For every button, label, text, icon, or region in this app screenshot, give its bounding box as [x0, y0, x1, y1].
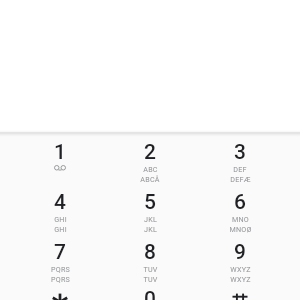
- staticText: ABCÅ: [140, 175, 160, 183]
- staticText: 9: [234, 240, 246, 265]
- button[interactable]: 0: [105, 279, 195, 300]
- staticText: 1: [54, 140, 66, 165]
- staticText: TUV: [143, 275, 158, 283]
- button[interactable]: 6: [195, 182, 285, 232]
- button[interactable]: 7: [15, 232, 105, 282]
- staticText: 3: [234, 140, 246, 165]
- staticText: TUV: [143, 265, 158, 273]
- staticText: WXYZ: [230, 265, 251, 273]
- button[interactable]: 3: [195, 132, 285, 182]
- staticText: MNO: [232, 215, 249, 223]
- button[interactable]: 8: [105, 232, 195, 282]
- button[interactable]: Star key: [15, 279, 105, 300]
- staticText: PQRS: [51, 275, 70, 283]
- staticText: PQRS: [51, 265, 70, 273]
- staticText: WXYZ: [230, 275, 251, 283]
- button[interactable]: 5: [105, 182, 195, 232]
- staticText: 6: [234, 190, 246, 215]
- button[interactable]: 2: [105, 132, 195, 182]
- staticText: DEFÆ: [230, 175, 251, 183]
- staticText: 2: [144, 140, 156, 165]
- staticText: MNOØ: [229, 225, 252, 233]
- button[interactable]: 1: [15, 132, 105, 182]
- staticText: JKL: [144, 215, 157, 223]
- staticText: 8: [144, 240, 156, 265]
- staticText: 0: [144, 287, 156, 300]
- staticText: ABC: [143, 165, 158, 173]
- staticText: GHI: [54, 215, 67, 223]
- staticText: 7: [54, 240, 66, 265]
- button[interactable]: 9: [195, 232, 285, 282]
- staticText: 5: [144, 190, 156, 215]
- button[interactable]: 4: [15, 182, 105, 232]
- staticText: 4: [54, 190, 66, 215]
- button[interactable]: Pound key: [195, 279, 285, 300]
- staticText: GHI: [54, 225, 67, 233]
- staticText: DEF: [233, 165, 247, 173]
- staticText: JKL: [144, 225, 157, 233]
